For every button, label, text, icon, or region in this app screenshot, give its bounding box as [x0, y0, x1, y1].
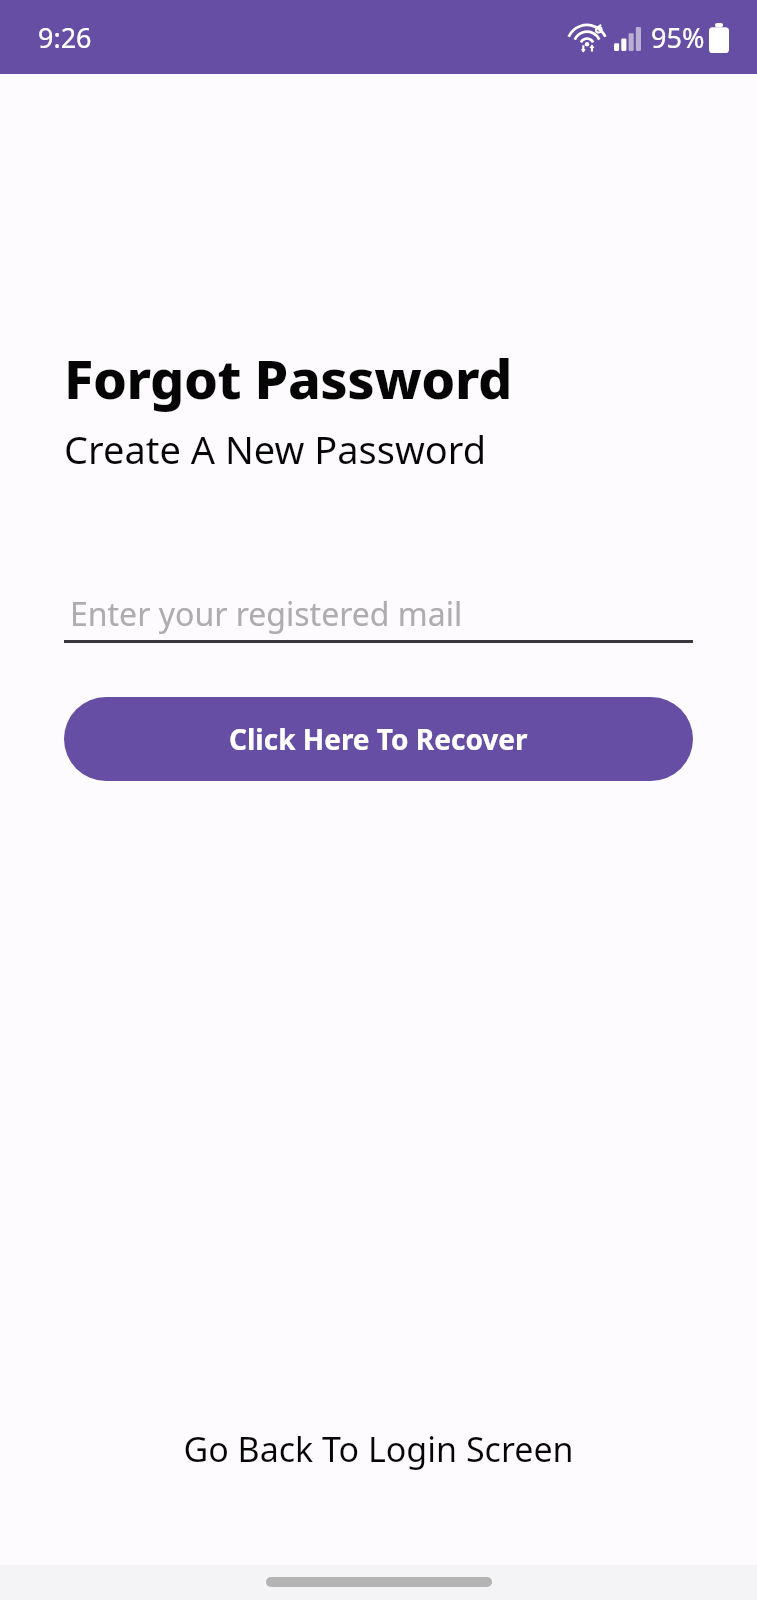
staticText: Enter your registered mail	[70, 592, 463, 636]
staticText: Click Here To Recover	[229, 720, 528, 758]
staticText: 9:26	[38, 19, 92, 56]
other: Mobile signal	[614, 25, 641, 51]
staticText: Go Back To Login Screen	[183, 1426, 574, 1472]
button[interactable]: Enter your registered mail	[64, 588, 693, 643]
staticText: 95%	[651, 19, 705, 56]
other: Battery 95 percent	[709, 23, 729, 53]
staticText: Create A New Password	[64, 423, 487, 475]
button[interactable]: Go Back To Login Screen	[0, 1418, 757, 1480]
button[interactable]: Click Here To Recover	[64, 697, 693, 781]
staticText: Forgot Password	[64, 341, 512, 415]
other: Wi-Fi	[574, 25, 605, 51]
